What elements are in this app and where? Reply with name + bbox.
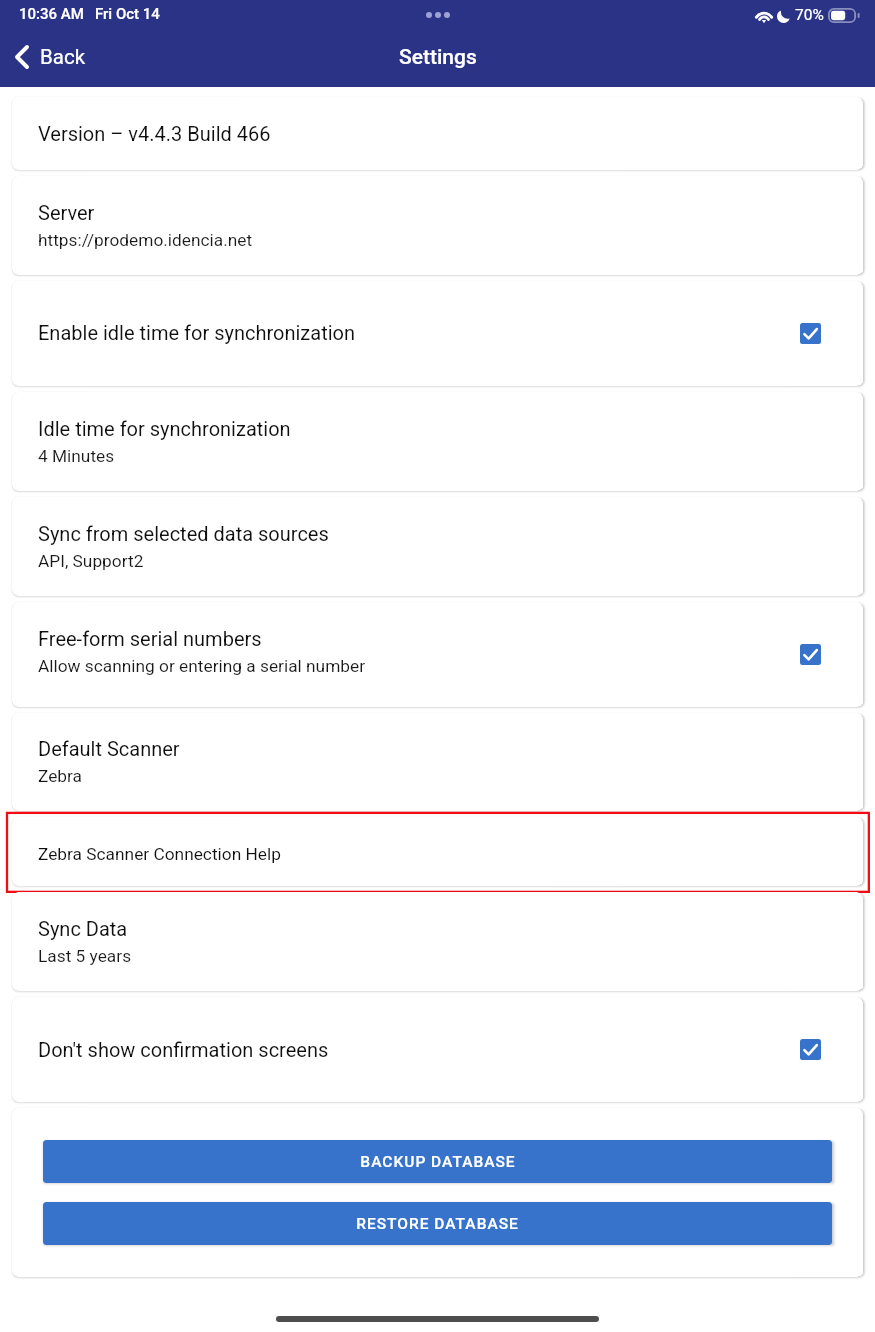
staticText: Settings <box>399 45 477 70</box>
staticText: 70% <box>795 6 824 24</box>
button[interactable]: Zebra Scanner Connection Help <box>12 817 863 886</box>
button[interactable]: Server <box>12 176 863 275</box>
staticText: https://prodemo.idencia.net <box>38 230 253 250</box>
staticText: Fri Oct 14 <box>95 5 160 23</box>
staticText: Default Scanner <box>38 737 180 760</box>
staticText: Version – v4.4.3 Build 466 <box>38 122 271 145</box>
staticText: 10:36 AM <box>19 5 84 23</box>
button[interactable]: Enable idle time for synchronization <box>12 281 863 386</box>
button[interactable]: Sync Data <box>12 892 863 991</box>
staticText: Sync Data <box>38 917 128 940</box>
staticText: Zebra Scanner Connection Help <box>38 844 281 864</box>
staticText: 4 Minutes <box>38 446 115 466</box>
staticText: Zebra <box>38 766 83 786</box>
staticText: Last 5 years <box>38 946 132 966</box>
staticText: API, Support2 <box>38 551 144 571</box>
staticText: Don't show confirmation screens <box>38 1038 329 1061</box>
button[interactable]: BACKUP DATABASE <box>12 1108 863 1277</box>
button[interactable]: Toggle setting <box>800 1039 821 1060</box>
staticText: RESTORE DATABASE <box>356 1215 519 1233</box>
button[interactable]: Idle time for synchronization <box>12 392 863 491</box>
button[interactable]: Toggle setting <box>800 323 821 344</box>
button[interactable]: Version – v4.4.3 Build 466 <box>12 97 863 170</box>
button[interactable]: Default Scanner <box>12 713 863 811</box>
button[interactable]: BACKUP DATABASE <box>43 1140 832 1183</box>
staticText: Allow scanning or entering a serial numb… <box>38 656 366 676</box>
button[interactable]: Back <box>15 34 86 80</box>
staticText: Back <box>40 45 86 69</box>
staticText: Sync from selected data sources <box>38 522 329 545</box>
staticText: Idle time for synchronization <box>38 417 291 440</box>
button[interactable]: Sync from selected data sources <box>12 497 863 596</box>
staticText: BACKUP DATABASE <box>360 1153 516 1171</box>
staticText: Free-form serial numbers <box>38 627 262 650</box>
button[interactable]: Free-form serial numbers <box>12 602 863 707</box>
button[interactable]: Toggle setting <box>800 644 821 665</box>
button[interactable]: Don't show confirmation screens <box>12 997 863 1102</box>
staticText: Enable idle time for synchronization <box>38 321 356 344</box>
button[interactable]: RESTORE DATABASE <box>43 1202 832 1245</box>
staticText: Server <box>38 201 95 224</box>
